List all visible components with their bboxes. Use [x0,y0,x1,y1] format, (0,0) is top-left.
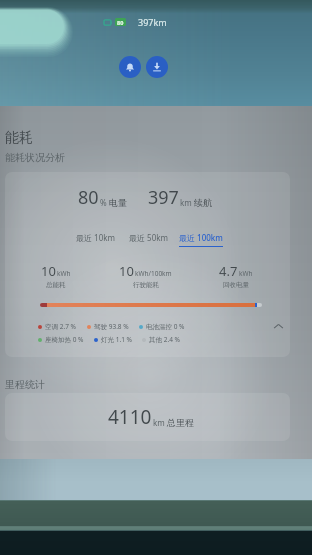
staticText: 电量 [109,197,127,208]
button[interactable]: Notifications [119,56,141,78]
staticText: 总里程 [167,417,194,428]
button[interactable]: Download [146,56,168,78]
staticText: kWh [239,269,253,278]
staticText: 灯光 1.1 % [101,335,132,344]
staticText: 里程统计 [5,378,45,391]
staticText: kWh [57,269,71,278]
staticText: km [153,417,165,428]
staticText: 10 [41,262,56,280]
staticText: 最近 100km [179,232,223,243]
staticText: 最近 50km [129,232,168,243]
staticText: % [100,197,107,208]
button[interactable]: 最近 50km [129,232,168,246]
staticText: 能耗状况分析 [5,151,65,164]
staticText: 驾驶 93.8 % [94,322,129,331]
staticText: 回收电量 [223,281,249,289]
staticText: 10 [119,262,134,280]
button[interactable]: 最近 100km [179,232,223,247]
staticText: 最近 10km [76,232,115,243]
staticText: kWh/100km [135,269,172,278]
staticText: 其他 2.4 % [149,335,180,344]
button[interactable]: 最近 10km [76,232,115,246]
staticText: 4110 [108,404,152,430]
staticText: 电池温控 0 % [146,322,185,331]
staticText: 4.7 [219,262,238,280]
staticText: 397km [138,16,167,28]
staticText: 续航 [194,197,212,208]
staticText: 80 [78,185,99,210]
staticText: 座椅加热 0 % [45,335,84,344]
staticText: 80 [117,19,124,26]
staticText: 能耗 [5,129,33,147]
staticText: km [180,197,192,208]
staticText: 397 [148,185,179,210]
staticText: 行驶能耗 [133,281,159,289]
staticText: 总能耗 [46,281,66,289]
staticText: 空调 2.7 % [45,322,76,331]
button[interactable]: Collapse [272,320,285,333]
